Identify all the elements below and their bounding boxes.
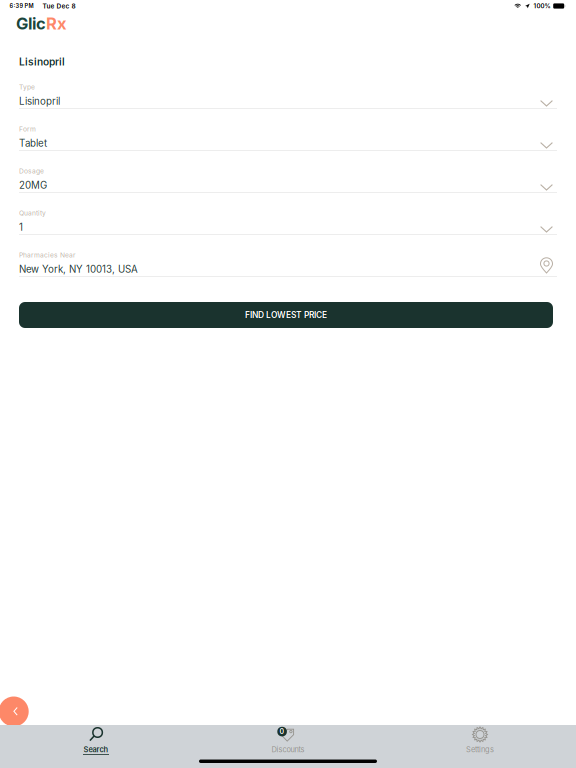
button[interactable]: Quantity <box>19 209 557 251</box>
staticText: 1 <box>19 221 23 233</box>
staticText: Settings <box>466 745 494 754</box>
button[interactable]: Back <box>0 696 29 726</box>
staticText: Quantity <box>19 209 46 217</box>
button[interactable]: 0 <box>192 725 384 768</box>
button[interactable]: Form <box>19 125 557 167</box>
button[interactable]: Type <box>19 83 557 125</box>
staticText: Dosage <box>19 167 44 175</box>
staticText: Form <box>19 125 36 133</box>
staticText: 100% <box>533 2 550 10</box>
button[interactable]: Pharmacies Near <box>19 251 557 293</box>
button[interactable]: Search <box>0 725 192 768</box>
staticText: Pharmacies Near <box>19 251 76 259</box>
staticText: Type <box>19 83 35 91</box>
staticText: Tue Dec 8 <box>43 2 76 10</box>
staticText: FIND LOWEST PRICE <box>245 310 327 320</box>
staticText: New York, NY 10013, USA <box>19 263 138 275</box>
staticText: Discounts <box>271 745 304 754</box>
button[interactable]: Settings <box>384 725 576 768</box>
staticText: Glic <box>16 13 46 33</box>
staticText: Lisinopril <box>19 56 65 68</box>
staticText: Tablet <box>19 137 47 149</box>
staticText: 0 <box>280 727 285 736</box>
staticText: Search <box>83 745 108 754</box>
button[interactable]: Dosage <box>19 167 557 209</box>
staticText: Rx <box>46 13 67 33</box>
button[interactable]: FIND LOWEST PRICE <box>19 302 557 328</box>
staticText: Lisinopril <box>19 95 60 107</box>
button[interactable]: Glic <box>0 16 576 31</box>
staticText: 20MG <box>19 179 47 191</box>
staticText: 6:39 PM <box>10 3 34 9</box>
